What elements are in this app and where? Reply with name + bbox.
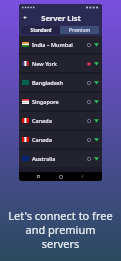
button[interactable]: Premium Servers	[60, 26, 99, 34]
staticText: Canada	[32, 136, 52, 143]
staticText: Australia	[32, 155, 56, 162]
staticText: Canada	[32, 117, 52, 124]
staticText: Let's connect to free and premium server…	[8, 208, 113, 251]
button[interactable]: Bangladesh	[19, 74, 102, 91]
button[interactable]: Canada	[19, 131, 102, 148]
staticText: Server List	[41, 13, 81, 23]
button[interactable]: India – Mumbai	[19, 36, 102, 53]
button[interactable]: Standard Servers	[22, 26, 60, 34]
button[interactable]: Canada	[19, 112, 102, 129]
staticText: Singapore	[32, 98, 59, 105]
staticText: New York	[32, 60, 57, 67]
staticText: India – Mumbai	[32, 41, 73, 48]
button[interactable]: Australia	[19, 150, 102, 167]
button[interactable]: New York	[19, 55, 102, 72]
staticText: Bangladesh	[32, 79, 63, 86]
button[interactable]: Back	[21, 13, 30, 22]
staticText: Premium Servers	[60, 27, 99, 33]
staticText: Standard Servers	[22, 27, 60, 33]
button[interactable]: Singapore	[19, 93, 102, 110]
